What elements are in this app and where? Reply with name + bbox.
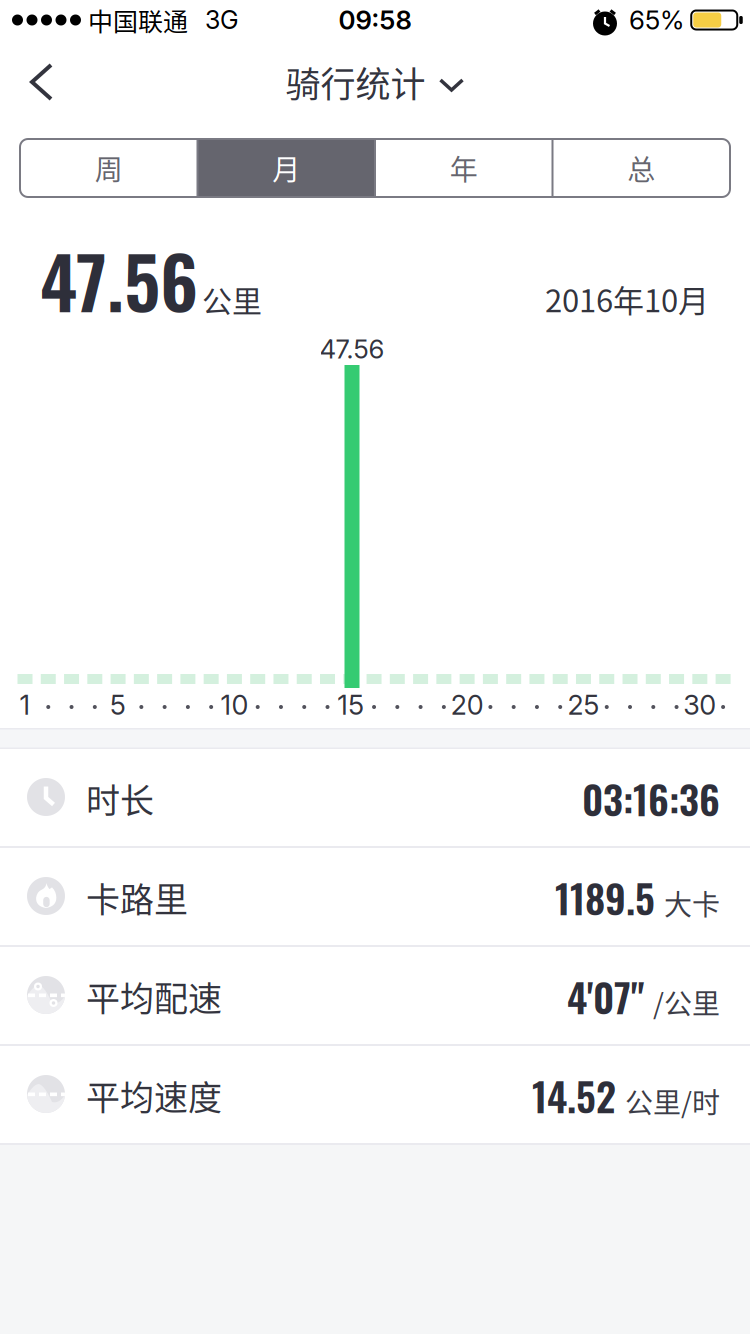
staticText: 1 <box>19 689 30 721</box>
staticText: 03:16:36 <box>582 769 720 828</box>
staticText: /公里 <box>653 982 720 1022</box>
staticText: 14.52 <box>532 1066 616 1125</box>
staticText: 公里/时 <box>625 1081 720 1121</box>
staticText: 1189.5 <box>555 868 655 927</box>
staticText: 骑行统计 <box>285 57 425 107</box>
staticText: 大卡 <box>664 883 720 923</box>
staticText: 周 <box>95 148 123 188</box>
staticText: 公里 <box>202 277 262 321</box>
staticText: 20 <box>451 689 484 721</box>
staticText: 月 <box>272 148 300 188</box>
button[interactable]: 月 <box>197 139 375 197</box>
staticText: 5 <box>110 689 126 721</box>
button[interactable]: 骑行统计 <box>285 57 464 107</box>
button[interactable]: 平均配速 <box>0 947 750 1046</box>
staticText: 25 <box>567 689 599 721</box>
button[interactable]: 总 <box>552 139 730 197</box>
staticText: 65% <box>629 4 684 36</box>
staticText: 47.56 <box>319 333 384 365</box>
staticText: 10 <box>220 689 248 721</box>
staticText: 平均速度 <box>86 1071 222 1120</box>
staticText: 年 <box>450 148 478 188</box>
button[interactable]: 周 <box>20 139 197 197</box>
button[interactable]: Back <box>25 61 69 105</box>
staticText: 时长 <box>86 774 154 823</box>
button[interactable]: 卡路里 <box>0 848 750 947</box>
staticText: 30 <box>683 689 716 721</box>
button[interactable]: 平均速度 <box>0 1046 750 1145</box>
staticText: 47.56 <box>40 226 198 333</box>
staticText: 15 <box>337 689 364 721</box>
staticText: 总 <box>627 148 655 188</box>
staticText: 中国联通 <box>88 2 188 38</box>
staticText: 卡路里 <box>86 873 188 922</box>
staticText: 4'07" <box>567 967 644 1026</box>
button[interactable]: 年 <box>375 139 552 197</box>
button[interactable]: 时长 <box>0 749 750 848</box>
staticText: 3G <box>205 5 239 35</box>
staticText: 平均配速 <box>86 972 222 1021</box>
staticText: 09:58 <box>338 4 411 36</box>
staticText: 2016年10月 <box>545 276 709 321</box>
